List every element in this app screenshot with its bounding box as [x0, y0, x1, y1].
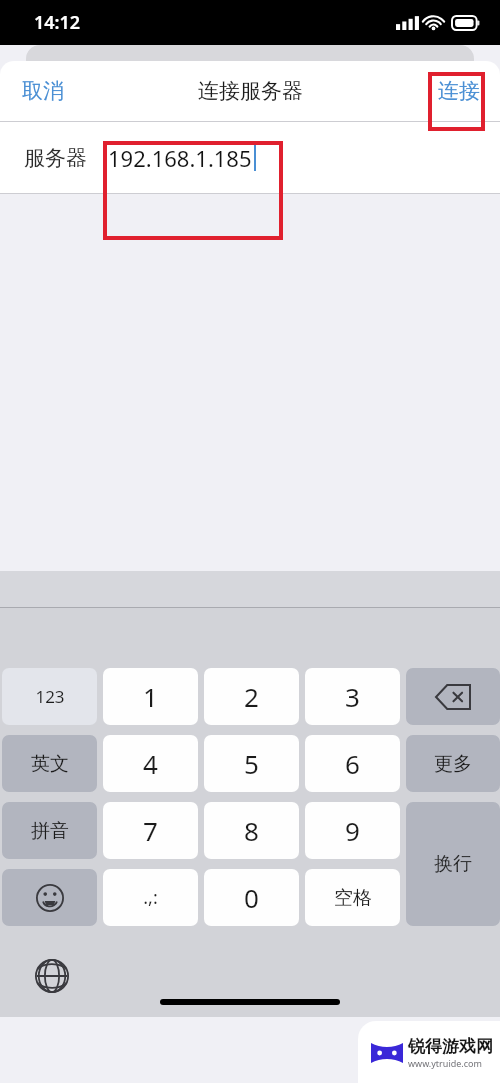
- staticText: 拼音: [31, 819, 69, 843]
- staticText: 9: [345, 813, 360, 848]
- button[interactable]: 192.168.1.185: [108, 143, 500, 173]
- staticText: 8: [244, 813, 259, 848]
- button[interactable]: 4: [103, 735, 198, 792]
- staticText: 5: [244, 746, 259, 781]
- button[interactable]: 1: [103, 668, 198, 725]
- button[interactable]: 取消: [0, 66, 86, 116]
- button[interactable]: 更多: [406, 735, 500, 792]
- staticText: 192.168.1.185: [108, 143, 252, 173]
- button[interactable]: Backspace: [406, 668, 500, 725]
- staticText: 2: [244, 679, 259, 714]
- button[interactable]: 8: [204, 802, 299, 859]
- button[interactable]: Switch keyboard language: [30, 954, 74, 998]
- staticText: 0: [244, 880, 259, 915]
- staticText: 英文: [31, 752, 69, 776]
- staticText: 锐得游戏网: [408, 1036, 493, 1057]
- staticText: 更多: [434, 752, 472, 776]
- button[interactable]: .,:: [103, 869, 198, 926]
- button[interactable]: 英文: [2, 735, 97, 792]
- staticText: 3: [345, 679, 360, 714]
- button[interactable]: 空格: [305, 869, 400, 926]
- staticText: 取消: [22, 78, 64, 104]
- button[interactable]: 5: [204, 735, 299, 792]
- button[interactable]: 换行: [406, 802, 500, 926]
- button[interactable]: 6: [305, 735, 400, 792]
- staticText: .,:: [143, 885, 158, 910]
- button[interactable]: 0: [204, 869, 299, 926]
- button[interactable]: 7: [103, 802, 198, 859]
- button[interactable]: 3: [305, 668, 400, 725]
- staticText: 123: [35, 685, 65, 708]
- staticText: 连接: [438, 78, 480, 104]
- staticText: 7: [143, 813, 158, 848]
- button[interactable]: 连接: [418, 66, 500, 116]
- button[interactable]: Emoji: [2, 869, 97, 926]
- button[interactable]: 123: [2, 668, 97, 725]
- staticText: 空格: [334, 886, 372, 910]
- staticText: 14:12: [34, 10, 81, 35]
- staticText: 服务器: [24, 145, 87, 171]
- button[interactable]: 2: [204, 668, 299, 725]
- staticText: 6: [345, 746, 360, 781]
- staticText: 1: [143, 679, 158, 714]
- staticText: 4: [143, 746, 158, 781]
- staticText: www.ytruide.com: [408, 1057, 482, 1069]
- button[interactable]: 拼音: [2, 802, 97, 859]
- button[interactable]: 9: [305, 802, 400, 859]
- staticText: 换行: [434, 852, 472, 876]
- staticText: 连接服务器: [198, 78, 303, 104]
